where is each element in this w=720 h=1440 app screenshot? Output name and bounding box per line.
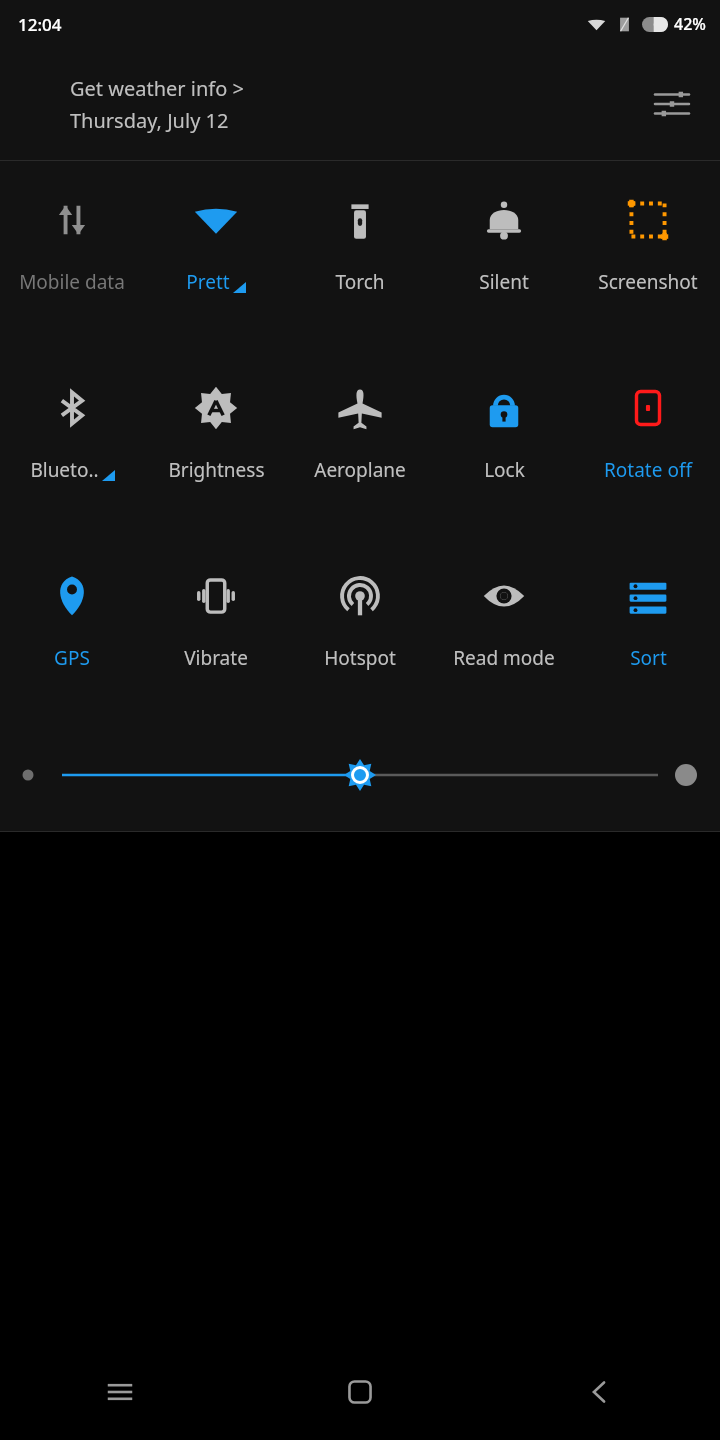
- button[interactable]: Sort: [576, 555, 720, 743]
- button[interactable]: Screenshot: [576, 179, 720, 367]
- staticText: Torch: [335, 269, 385, 295]
- button[interactable]: Settings: [644, 76, 700, 132]
- button[interactable]: Hotspot: [288, 555, 432, 743]
- staticText: Mobile data: [19, 269, 125, 295]
- button[interactable]: Blueto..: [0, 367, 144, 555]
- button[interactable]: Prett: [144, 179, 288, 367]
- button[interactable]: Recents: [0, 1344, 240, 1440]
- staticText: 42%: [674, 13, 706, 35]
- staticText: GPS: [54, 645, 90, 671]
- staticText: Hotspot: [324, 645, 396, 671]
- button[interactable]: Silent: [432, 179, 576, 367]
- button[interactable]: Brightness: [144, 367, 288, 555]
- button[interactable]: GPS: [0, 555, 144, 743]
- staticText: Aeroplane: [314, 457, 406, 483]
- staticText: Silent: [479, 269, 529, 295]
- button[interactable]: Get weather info >: [70, 75, 644, 134]
- staticText: Prett: [186, 269, 230, 295]
- staticText: Rotate off: [604, 457, 692, 483]
- staticText: Screenshot: [598, 269, 698, 295]
- staticText: 12:04: [18, 13, 62, 36]
- staticText: Get weather info >: [70, 75, 244, 102]
- staticText: Lock: [484, 457, 525, 483]
- staticText: Blueto..: [30, 457, 99, 483]
- button[interactable]: Mobile data: [0, 179, 144, 367]
- staticText: Thursday, July 12: [70, 107, 229, 134]
- button[interactable]: Torch: [288, 179, 432, 367]
- button[interactable]: Back: [480, 1344, 720, 1440]
- button[interactable]: Aeroplane: [288, 367, 432, 555]
- button[interactable]: Read mode: [432, 555, 576, 743]
- button[interactable]: Vibrate: [144, 555, 288, 743]
- staticText: Read mode: [453, 645, 555, 671]
- staticText: Brightness: [168, 457, 265, 483]
- staticText: Sort: [630, 645, 667, 671]
- button[interactable]: Rotate off: [576, 367, 720, 555]
- staticText: Vibrate: [184, 645, 248, 671]
- button[interactable]: Lock: [432, 367, 576, 555]
- button[interactable]: Home: [240, 1344, 480, 1440]
